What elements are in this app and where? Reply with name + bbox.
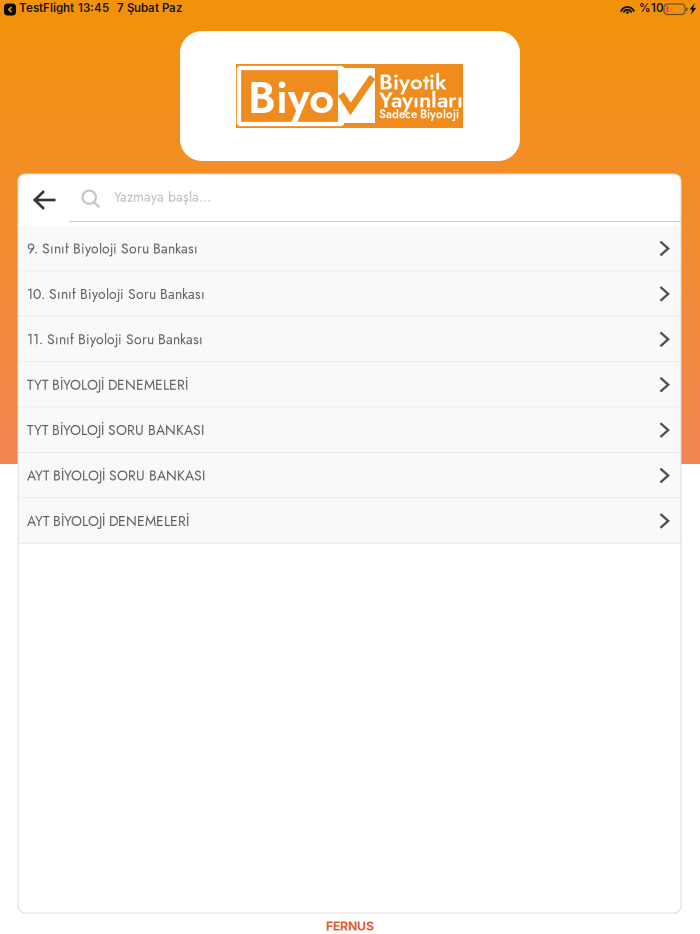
staticText: AYT BİYOLOJİ DENEMELERİ — [27, 511, 189, 531]
staticText: Biyo — [248, 66, 334, 130]
button[interactable]: 10. Sınıf Biyoloji Soru Bankası — [18, 271, 681, 317]
staticText: Biyotik — [379, 66, 447, 98]
button[interactable]: AYT BİYOLOJİ DENEMELERİ — [18, 498, 681, 544]
staticText: Yayınları — [379, 84, 463, 116]
staticText: TYT BİYOLOJİ DENEMELERİ — [27, 375, 188, 395]
staticText: Yazmaya başla... — [114, 187, 211, 207]
staticText: 7 Şubat Paz — [117, 1, 182, 15]
staticText: 13:45 — [78, 1, 109, 15]
staticText: 11. Sınıf Biyoloji Soru Bankası — [27, 329, 203, 349]
staticText: Sadece Biyoloji — [379, 106, 459, 123]
staticText: AYT BİYOLOJİ SORU BANKASI — [27, 466, 205, 486]
staticText: 10. Sınıf Biyoloji Soru Bankası — [27, 284, 205, 304]
staticText: %10 — [639, 1, 664, 15]
button[interactable]: Back — [24, 174, 66, 226]
staticText: 9. Sınıf Biyoloji Soru Bankası — [27, 239, 198, 259]
button[interactable]: 11. Sınıf Biyoloji Soru Bankası — [18, 317, 681, 362]
button[interactable]: TYT BİYOLOJİ SORU BANKASI — [18, 408, 681, 453]
staticText: FERNUS — [326, 919, 374, 933]
button[interactable]: TYT BİYOLOJİ DENEMELERİ — [18, 362, 681, 408]
button[interactable]: AYT BİYOLOJİ SORU BANKASI — [18, 453, 681, 498]
staticText: TestFlight — [19, 1, 74, 15]
staticText: TYT BİYOLOJİ SORU BANKASI — [27, 420, 204, 440]
button[interactable]: 9. Sınıf Biyoloji Soru Bankası — [18, 226, 681, 271]
